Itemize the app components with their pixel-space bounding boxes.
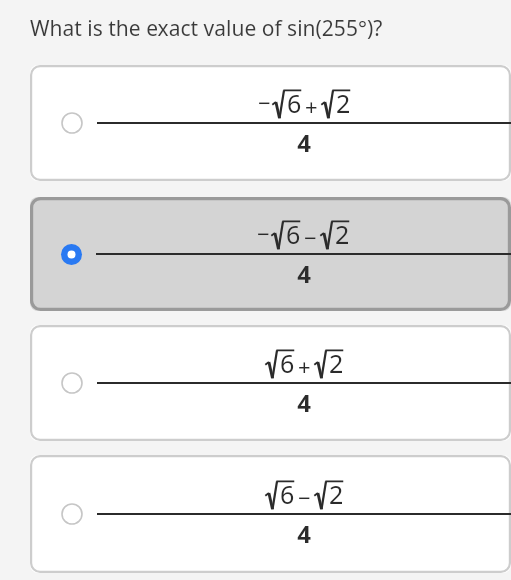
staticText: 2 (336, 86, 351, 120)
other: Answer choice radio button (61, 503, 83, 525)
staticText: What is the exact value of sin(255°)? (30, 14, 383, 43)
other: Answer choice radio button (61, 112, 83, 134)
button[interactable]: Answer choice radio button (30, 65, 511, 181)
staticText: + (298, 351, 311, 381)
button[interactable]: Answer choice radio button (30, 455, 511, 573)
staticText: 4 (297, 126, 311, 159)
staticText: − (304, 222, 317, 252)
staticText: − (298, 482, 311, 512)
staticText: 6 (287, 86, 302, 120)
staticText: 4 (297, 517, 311, 550)
staticText: − (257, 218, 270, 248)
staticText: 2 (335, 217, 350, 251)
staticText: 6 (280, 346, 295, 380)
staticText: 2 (329, 477, 344, 511)
staticText: 4 (297, 257, 311, 290)
staticText: + (305, 91, 318, 121)
other: Answer choice radio button (61, 244, 82, 265)
staticText: − (258, 87, 271, 117)
button[interactable]: Answer choice radio button (30, 197, 511, 311)
button[interactable]: Answer choice radio button (30, 325, 511, 441)
staticText: 2 (329, 346, 344, 380)
staticText: 6 (286, 217, 301, 251)
staticText: 6 (280, 477, 295, 511)
other: Answer choice radio button (61, 372, 83, 394)
staticText: 4 (297, 386, 311, 419)
